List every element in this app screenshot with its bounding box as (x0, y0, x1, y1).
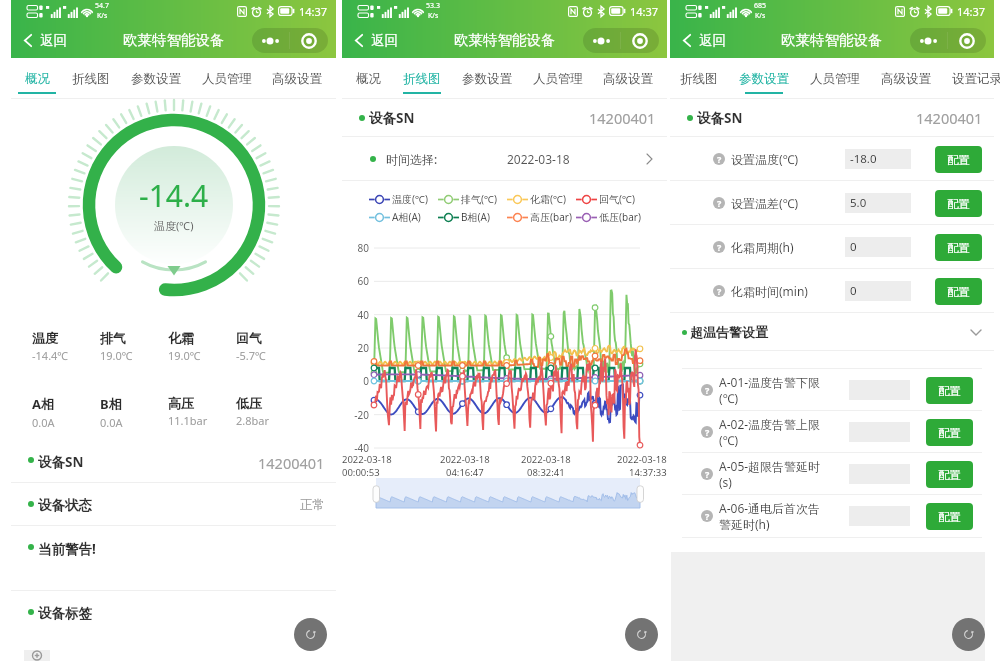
button[interactable]: 配置 (926, 461, 973, 488)
staticText: 2.8bar (236, 413, 270, 428)
staticText: 14:37 (957, 4, 986, 19)
staticText: 排气 (100, 330, 126, 346)
button[interactable]: Refresh (952, 618, 985, 651)
button[interactable]: 概况 (7, 58, 67, 99)
staticText: 高压 (168, 395, 194, 411)
staticText: ? (717, 153, 722, 165)
staticText: 人员管理 (202, 71, 252, 87)
staticText: 欧莱特智能设备 (454, 31, 556, 49)
button[interactable]: Add tag (24, 650, 50, 661)
staticText: 参数设置 (462, 71, 512, 87)
staticText: A相 (32, 395, 54, 413)
button[interactable]: 设备SN (342, 99, 667, 137)
staticText: 19.0℃ (100, 348, 133, 363)
staticText: 设备状态 (38, 497, 92, 514)
staticText: 5.0 (850, 195, 867, 211)
button[interactable]: 配置 (935, 190, 982, 217)
button[interactable]: 人员管理 (528, 58, 588, 99)
button[interactable]: 参数设置 (734, 58, 794, 99)
button[interactable]: 配置 (935, 234, 982, 261)
staticText: 配置 (938, 468, 961, 482)
staticText: 11.1bar (168, 413, 208, 428)
staticText: ? (705, 468, 710, 480)
button[interactable]: 概况 (338, 58, 398, 99)
button[interactable]: 参数设置 (457, 58, 517, 99)
staticText: 温度(℃) (154, 218, 194, 233)
button[interactable]: 高级设置 (598, 58, 658, 99)
staticText: 40 (342, 308, 369, 322)
staticText: 高级设置 (603, 71, 653, 87)
button[interactable]: 超温告警设置 (670, 313, 994, 351)
staticText: 温度(℃) (392, 192, 428, 206)
button[interactable]: 设备SN (11, 439, 336, 483)
staticText: 低压(bar) (599, 210, 641, 224)
button[interactable]: 设备状态 (11, 483, 336, 526)
staticText: 685 (754, 1, 767, 11)
staticText: 概况 (356, 71, 381, 87)
staticText: 时间选择: (386, 151, 438, 167)
button[interactable]: Refresh (294, 618, 327, 651)
staticText: 54.7 (95, 1, 109, 11)
button[interactable]: 高级设置 (267, 58, 327, 99)
button[interactable]: 时间选择: (342, 137, 667, 181)
staticText: 0 (850, 239, 857, 255)
button[interactable]: 设备SN (670, 99, 994, 137)
staticText: 0.0A (100, 415, 123, 430)
staticText: ? (717, 241, 722, 253)
staticText: 高级设置 (881, 71, 931, 87)
staticText: -5.7℃ (236, 348, 267, 363)
staticText: 2022-03-18 (440, 453, 490, 466)
button[interactable]: Back (350, 27, 403, 54)
staticText: 设置记录 (952, 71, 1000, 87)
staticText: 温度 (32, 330, 58, 346)
button[interactable]: 设置记录 (947, 58, 1000, 99)
button[interactable]: Close (948, 28, 986, 53)
staticText: 回气 (236, 330, 262, 346)
staticText: 折线图 (403, 71, 441, 87)
staticText: 配置 (947, 197, 970, 211)
staticText: 高压(bar) (530, 210, 572, 224)
staticText: 低压 (236, 395, 262, 411)
staticText: ? (717, 197, 722, 209)
button[interactable]: More options (583, 28, 620, 53)
button[interactable]: More options (252, 28, 289, 53)
staticText: 0.0A (32, 415, 55, 430)
button[interactable]: 折线图 (61, 58, 121, 99)
button[interactable]: 人员管理 (805, 58, 865, 99)
staticText: -20 (342, 408, 369, 422)
staticText: 14200401 (916, 108, 983, 128)
button[interactable]: 配置 (926, 377, 973, 404)
staticText: 2022-03-18 (521, 453, 571, 466)
button[interactable]: Refresh (625, 618, 658, 651)
staticText: -14.4℃ (32, 348, 69, 363)
staticText: 欧莱特智能设备 (781, 31, 883, 49)
staticText: 14200401 (258, 453, 325, 473)
staticText: 0 (342, 374, 369, 388)
button[interactable]: 设备标签 (11, 591, 336, 650)
staticText: ? (717, 285, 722, 297)
button[interactable]: 参数设置 (126, 58, 186, 99)
button[interactable]: Close (290, 28, 328, 53)
staticText: 当前警告! (38, 540, 96, 558)
staticText: K/s (428, 11, 439, 21)
staticText: 高级设置 (272, 71, 322, 87)
button[interactable]: Close (621, 28, 659, 53)
staticText: 08:32:41 (527, 466, 565, 479)
staticText: 设置温差(℃) (731, 195, 799, 211)
button[interactable]: 人员管理 (197, 58, 257, 99)
button[interactable]: 配置 (926, 419, 973, 446)
button[interactable]: 配置 (926, 503, 973, 530)
button[interactable]: 折线图 (669, 58, 729, 99)
staticText: A-06-通电后首次告警延时(h) (719, 500, 824, 532)
button[interactable]: 配置 (935, 278, 982, 305)
button[interactable]: 高级设置 (876, 58, 936, 99)
staticText: 返回 (371, 32, 398, 49)
button[interactable]: 折线图 (392, 58, 452, 99)
button[interactable]: 当前警告! (11, 526, 336, 591)
button[interactable]: Back (19, 27, 72, 54)
button[interactable]: 配置 (935, 146, 982, 173)
staticText: 2022-03-18 (617, 453, 667, 466)
staticText: 0 (850, 283, 857, 299)
button[interactable]: More options (910, 28, 947, 53)
button[interactable]: Back (678, 27, 731, 54)
